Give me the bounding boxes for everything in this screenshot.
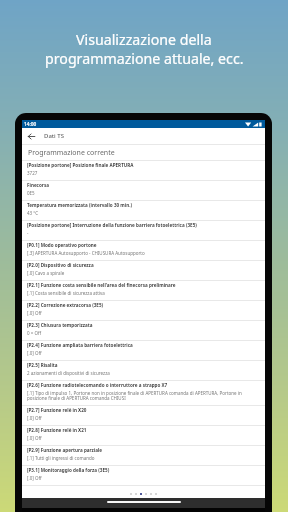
staticText: [.0] Off — [27, 435, 42, 441]
staticText: [P2.4] Funzione ampliata barriera fotoel… — [27, 342, 133, 348]
staticText: [P3.1] Monitoraggio della forza (3E5) — [27, 467, 110, 473]
staticText: [.0] Off — [27, 350, 42, 356]
staticText: 2 azionamenti di dispositivi di sicurezz… — [27, 370, 110, 376]
staticText: [P2.2] Correzione extracorsa (3E5) — [27, 302, 104, 308]
button[interactable]: [P2.7] Funzione relè in X20 — [22, 406, 265, 425]
staticText: [P2.8] Funzione relè in X21 — [27, 427, 87, 433]
staticText: [P2.5] Risalita — [27, 362, 58, 368]
button[interactable]: [P2.1] Funzione costa sensibile nell'are… — [22, 281, 265, 300]
staticText: [.1] Tutti gli ingressi di comando — [27, 455, 95, 461]
button[interactable]: [P2.8] Funzione relè in X21 — [22, 426, 265, 445]
staticText: [.0] Off — [27, 310, 42, 316]
staticText: [.1] Tipo di impulso 1, Portone non in p… — [27, 390, 260, 401]
button[interactable]: [Posizione portone] Posizione finale APE… — [22, 161, 265, 180]
staticText: Visualizzazione della — [76, 30, 212, 49]
staticText: [P2.6] Funzione radiotelecomando o inter… — [27, 382, 168, 388]
staticText: 3727 — [27, 170, 38, 176]
staticText: [.0] Off — [27, 415, 42, 421]
button[interactable]: [P2.9] Funzione apertura parziale — [22, 446, 265, 465]
staticText: Programmazione corrente — [28, 148, 115, 158]
button[interactable]: Back — [22, 128, 40, 144]
button[interactable]: [Posizione portone] Interruzione della f… — [22, 221, 265, 240]
staticText: [Posizione portone] Interruzione della f… — [27, 222, 197, 228]
staticText: [P2.9] Funzione apertura parziale — [27, 447, 103, 453]
staticText: [P2.1] Funzione costa sensibile nell'are… — [27, 282, 176, 288]
staticText: [.0] Cavo a spirale — [27, 270, 65, 276]
staticText: Finecorsa — [27, 182, 49, 188]
staticText: Temperatura memorizzata (intervallo 30 m… — [27, 202, 133, 208]
staticText: [.3] APERTURA Autosupporto - CHIUSURA Au… — [27, 250, 145, 256]
button[interactable]: [P2.3] Chiusura temporizzata — [22, 321, 265, 340]
button[interactable]: [P3.1] Monitoraggio della forza (3E5) — [22, 466, 265, 485]
button[interactable]: Temperatura memorizzata (intervallo 30 m… — [22, 201, 265, 220]
staticText: 14:00 — [24, 121, 37, 128]
button[interactable]: [P2.4] Funzione ampliata barriera fotoel… — [22, 341, 265, 360]
staticText: 0E5 — [27, 190, 35, 196]
staticText: - — [27, 230, 29, 236]
button[interactable]: [P0.1] Modo operativo portone — [22, 241, 265, 260]
staticText: [P2.3] Chiusura temporizzata — [27, 322, 93, 328]
staticText: 43 °C — [27, 210, 39, 216]
staticText: [.1] Costa sensibile di sicurezza attiva — [27, 290, 105, 296]
staticText: programmazione attuale, ecc. — [45, 49, 244, 68]
staticText: [.0] Off — [27, 475, 42, 481]
staticText: [P0.1] Modo operativo portone — [27, 242, 97, 248]
button[interactable]: [P2.6] Funzione radiotelecomando o inter… — [22, 381, 265, 405]
staticText: 0 = Off — [27, 330, 42, 336]
staticText: [P2.0] Dispositivo di sicurezza — [27, 262, 94, 268]
staticText: Dati TS — [44, 132, 64, 140]
staticText: [P2.7] Funzione relè in X20 — [27, 407, 87, 413]
staticText: [Posizione portone] Posizione finale APE… — [27, 162, 134, 168]
button[interactable]: [P2.5] Risalita — [22, 361, 265, 380]
button[interactable]: [P2.0] Dispositivo di sicurezza — [22, 261, 265, 280]
button[interactable]: [P2.2] Correzione extracorsa (3E5) — [22, 301, 265, 320]
button[interactable]: Finecorsa — [22, 181, 265, 200]
